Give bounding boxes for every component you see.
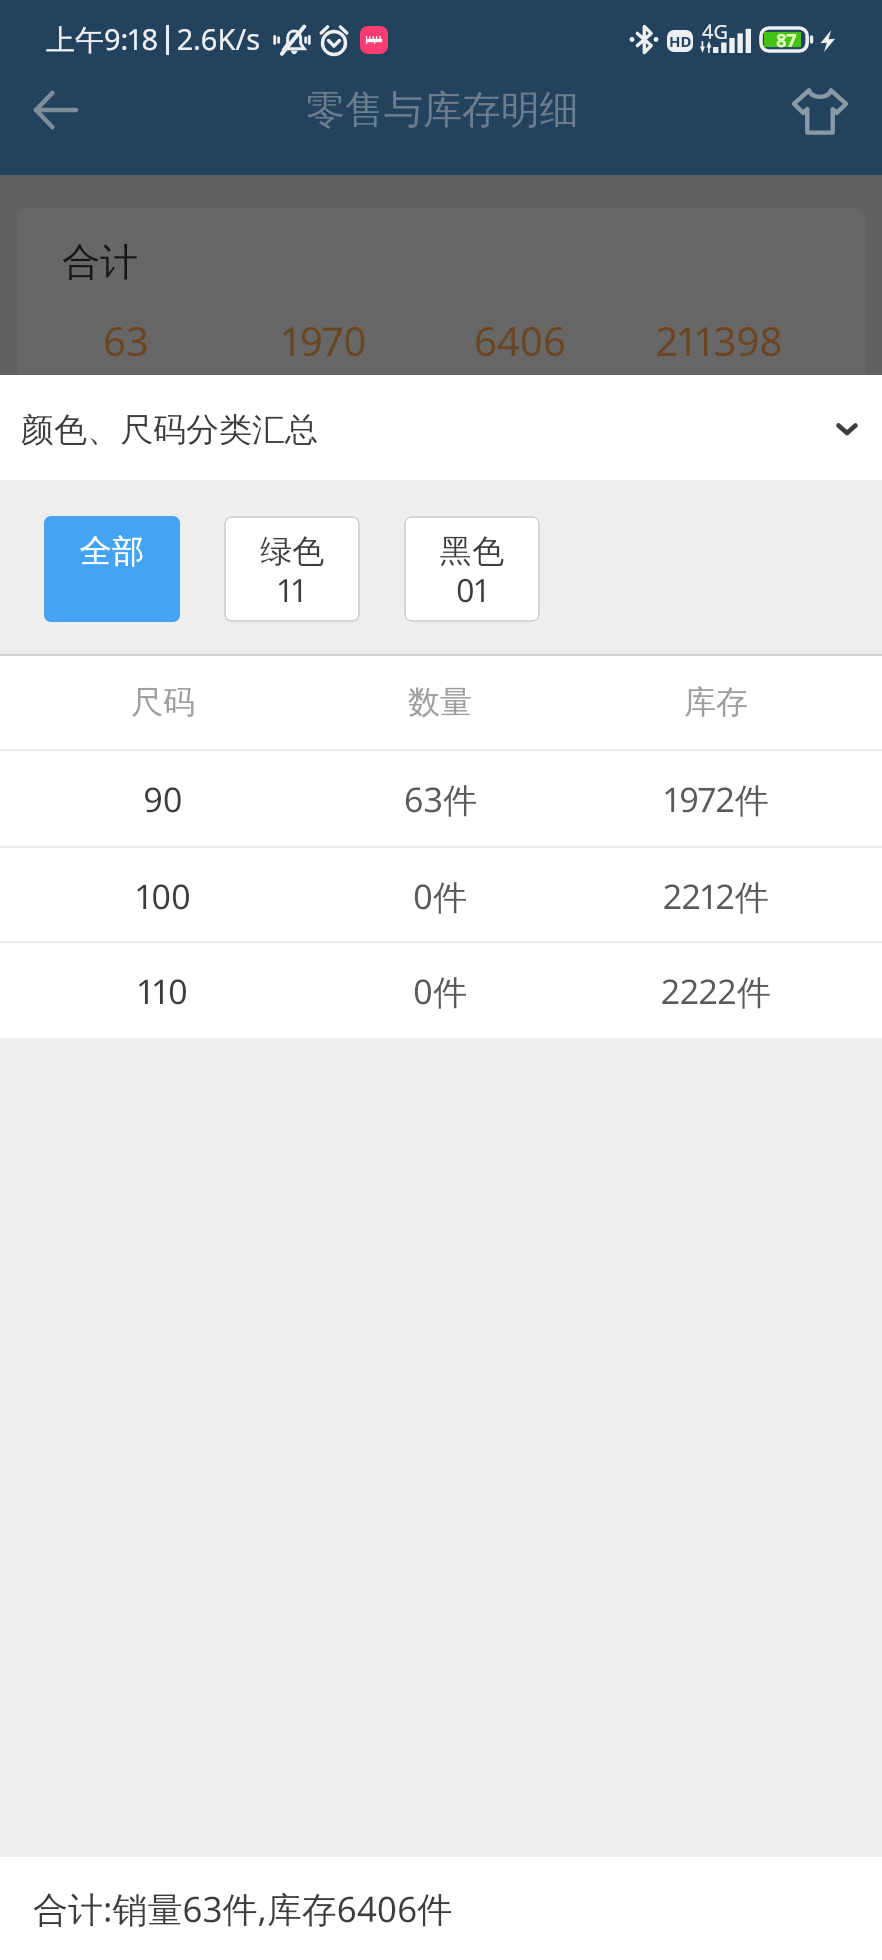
staticText: 绿色 [260, 531, 324, 571]
staticText: 合计:销量63件,库存6406件 [33, 1885, 453, 1933]
staticText: 颜色、尺码分类汇总 [21, 409, 318, 451]
staticText: 2222件 [661, 968, 771, 1014]
staticText: 211398 [656, 313, 783, 367]
staticText: 尺码 [131, 682, 195, 722]
staticText: 库存 [684, 682, 748, 722]
staticText: 零售与库存明细 [306, 85, 579, 134]
staticText: 0件 [413, 873, 467, 919]
staticText: 全部 [80, 531, 144, 571]
button[interactable]: 颜色、尺码分类汇总 [0, 375, 882, 480]
staticText: HD [669, 31, 692, 51]
button[interactable]: 110 [0, 943, 882, 1039]
staticText: 0件 [413, 968, 467, 1014]
staticText: 01 [456, 568, 489, 612]
button[interactable]: 100 [0, 848, 882, 944]
staticText: 63件 [404, 776, 477, 822]
staticText: 4G [702, 18, 728, 45]
staticText: 1972件 [664, 776, 769, 822]
staticText: 6406 [474, 313, 566, 367]
staticText: 63 [103, 313, 149, 367]
staticText: 100 [136, 873, 191, 919]
staticText: 上午9:18 [46, 19, 159, 59]
button[interactable]: Products [784, 75, 856, 147]
staticText: 87 [776, 28, 797, 53]
staticText: 11 [278, 568, 307, 612]
staticText: 110 [138, 968, 188, 1014]
staticText: 黑色 [440, 531, 504, 571]
button[interactable]: 绿色 [224, 516, 360, 622]
staticText: 数量 [408, 682, 472, 722]
button[interactable]: Back [20, 74, 92, 146]
button[interactable]: 90 [0, 751, 882, 847]
button[interactable]: 黑色 [404, 516, 540, 622]
staticText: 90 [143, 776, 183, 822]
staticText: 合计 [62, 238, 138, 286]
staticText: 2.6K/s [177, 19, 261, 58]
button[interactable]: 合计:销量63件,库存6406件 [0, 1857, 882, 1960]
staticText: 2212件 [663, 873, 769, 919]
button[interactable]: 全部 [44, 516, 180, 622]
staticText: 1970 [282, 313, 367, 367]
